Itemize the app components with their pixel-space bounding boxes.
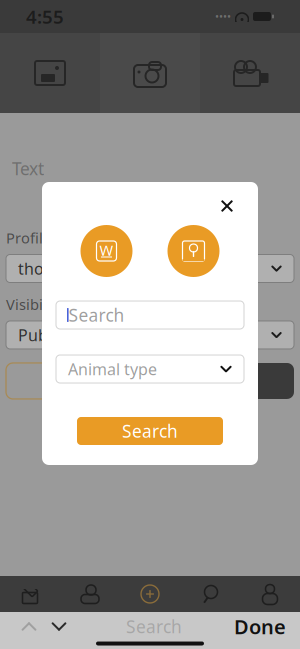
staticText: 4:55 <box>26 4 64 29</box>
staticText: Done <box>234 613 286 640</box>
staticText: Search <box>69 303 125 326</box>
staticText: Visibility <box>6 294 63 314</box>
staticText: thor <box>18 258 51 279</box>
staticText: Profile <box>6 228 51 247</box>
button[interactable]: Animal type <box>56 355 244 383</box>
staticText: •••• <box>215 9 231 24</box>
button[interactable]: Favorites <box>60 583 120 605</box>
button[interactable]: Close <box>212 191 242 221</box>
button[interactable]: Done <box>234 611 286 641</box>
staticText: Search <box>126 615 182 638</box>
button[interactable]: Add <box>120 583 180 605</box>
button[interactable]: Search <box>180 583 240 605</box>
button[interactable]: Next field <box>44 611 74 641</box>
button[interactable]: Home <box>0 583 60 605</box>
button[interactable]: Profile <box>240 583 300 605</box>
staticText: Search <box>122 419 178 442</box>
staticText: Animal type <box>68 358 157 380</box>
button[interactable]: Search <box>77 417 223 445</box>
button[interactable]: Choose photo <box>0 33 100 113</box>
button[interactable]: Search map <box>167 225 219 277</box>
staticText: Pubb <box>18 324 58 345</box>
staticText: Text <box>12 157 44 180</box>
staticText: W <box>99 240 113 260</box>
button[interactable]: Take photo <box>100 33 200 113</box>
button[interactable]: Search Wikipedia <box>80 225 132 277</box>
button[interactable]: Previous field <box>14 611 44 641</box>
button[interactable]: Search <box>56 301 244 329</box>
button[interactable]: Record video <box>200 33 300 113</box>
